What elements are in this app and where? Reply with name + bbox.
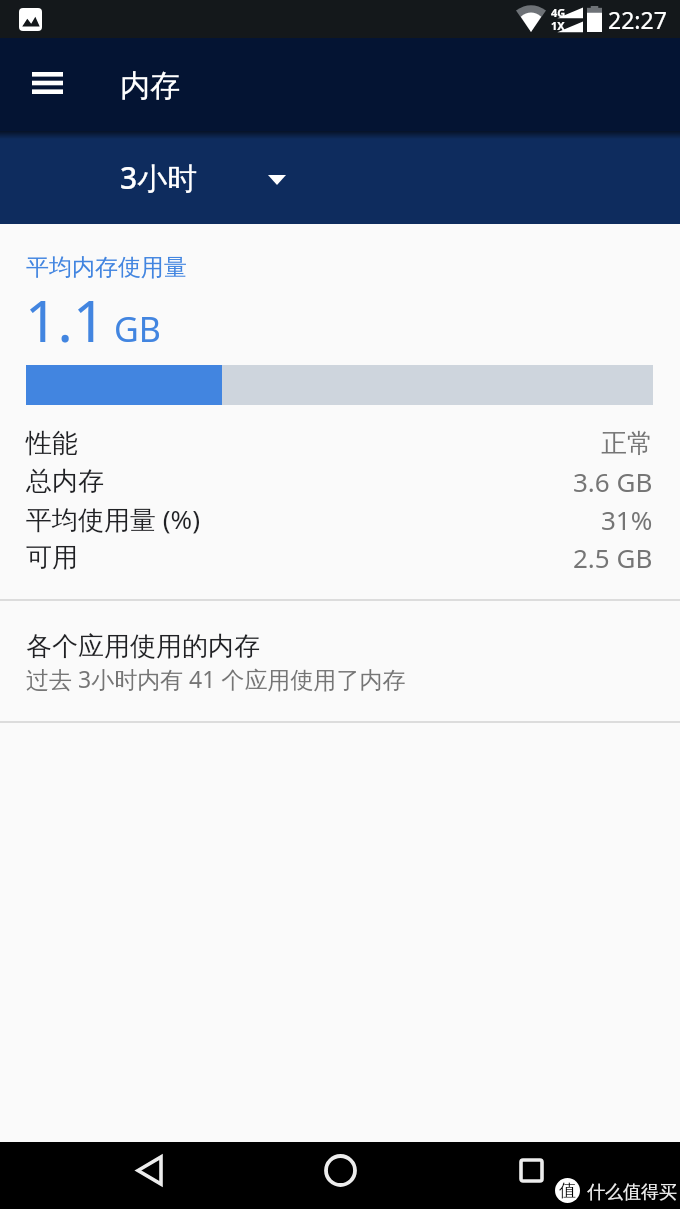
button[interactable]: Recent apps xyxy=(499,1138,563,1202)
staticText: 值 xyxy=(559,1180,576,1201)
staticText: 2.5 GB xyxy=(573,540,653,575)
button[interactable]: 3小时 xyxy=(100,143,306,212)
button[interactable]: Open navigation menu xyxy=(16,52,78,114)
button[interactable]: Back xyxy=(117,1138,181,1202)
staticText: 什么值得买 xyxy=(587,1181,677,1204)
staticText: 1.1 xyxy=(25,281,106,359)
staticText: 4G xyxy=(551,5,566,20)
staticText: 过去 3小时内有 41 个应用使用了内存 xyxy=(26,663,406,694)
staticText: 3.6 GB xyxy=(573,464,653,499)
staticText: 各个应用使用的内存 xyxy=(26,630,260,663)
staticText: 可用 xyxy=(26,541,78,574)
staticText: GB xyxy=(114,306,161,352)
staticText: 内存 xyxy=(120,67,180,105)
staticText: 22:27 xyxy=(608,4,667,35)
staticText: 正常 xyxy=(601,427,653,460)
staticText: 31% xyxy=(601,502,653,537)
button[interactable]: Home xyxy=(308,1138,372,1202)
staticText: 性能 xyxy=(26,427,78,460)
button[interactable]: 各个应用使用的内存 xyxy=(0,604,680,722)
staticText: 1X xyxy=(551,18,565,33)
staticText: 3小时 xyxy=(120,157,198,198)
staticText: 平均使用量 (%) xyxy=(26,501,200,537)
staticText: 总内存 xyxy=(26,465,104,498)
staticText: 平均内存使用量 xyxy=(26,253,187,282)
